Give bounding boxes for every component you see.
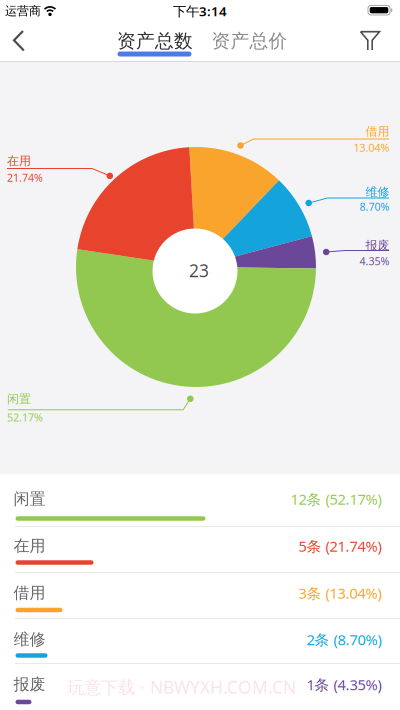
staticText: 5条 (21.74%) [298, 536, 381, 556]
staticText: 借用 [13, 583, 45, 603]
staticText: 资产总数 [117, 29, 193, 52]
staticText: 8.70% [359, 199, 389, 214]
staticText: 21.74% [7, 170, 43, 185]
button[interactable]: 资产总价 [194, 28, 304, 54]
staticText: 52.17% [7, 410, 43, 424]
staticText: 维修 [13, 630, 45, 649]
staticText: 3条 (13.04%) [298, 583, 381, 603]
staticText: 运营商 [5, 4, 41, 18]
staticText: 下午3:14 [173, 2, 227, 20]
staticText: 2条 (8.70%) [306, 630, 381, 649]
staticText: 借用 [365, 124, 389, 139]
staticText: 报废 [13, 675, 45, 694]
button[interactable]: 返回 [5, 27, 33, 55]
staticText: 闲置 [13, 489, 45, 509]
staticText: 闲置 [7, 392, 31, 406]
staticText: 13.04% [353, 140, 389, 155]
staticText: 在用 [7, 154, 31, 168]
staticText: 资产总价 [211, 29, 287, 52]
button[interactable]: 筛选 [356, 26, 384, 54]
staticText: 4.35% [359, 254, 389, 268]
button[interactable]: 资产总数 [100, 28, 210, 54]
staticText: 玩意下载 · NBWYXH.COM.CN [67, 675, 296, 698]
staticText: 维修 [365, 185, 389, 199]
staticText: 在用 [13, 536, 45, 556]
staticText: 23 [189, 259, 209, 282]
staticText: 1条 (4.35%) [306, 675, 381, 694]
staticText: 报废 [365, 238, 389, 253]
staticText: 12条 (52.17%) [290, 489, 381, 509]
